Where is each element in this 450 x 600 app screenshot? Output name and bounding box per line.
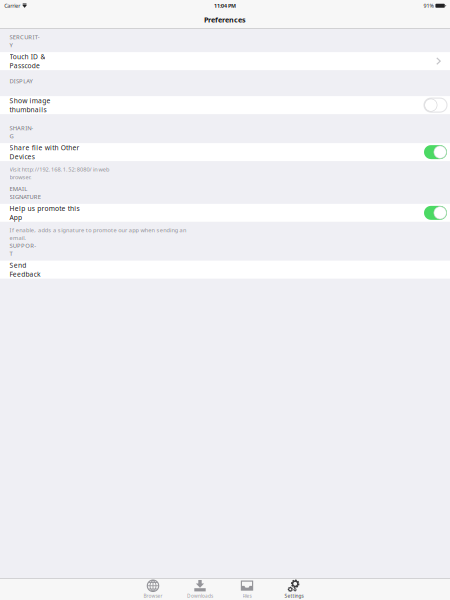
staticText: Send Feedback [10,260,41,279]
button[interactable]: Send Feedback [0,261,450,279]
staticText: 11:04 PM [214,2,236,9]
staticText: Visit http://192.168.1.52:8080/ in web b… [10,166,109,181]
staticText: Help us promote this App [10,204,79,222]
button[interactable]: Browser [129,579,176,600]
staticText: Files [242,593,251,599]
staticText: Show image thumbnails [10,96,50,114]
staticText: Downloads [187,593,213,599]
staticText: Share file with Other Devices [10,143,80,161]
button[interactable]: Show image thumbnails [0,96,450,114]
button[interactable]: Files [223,579,270,600]
button[interactable]: Downloads [176,579,223,600]
staticText: 91% [424,2,434,9]
staticText: SUPPORT [10,241,36,257]
staticText: SHARING [10,124,33,140]
button[interactable]: Touch ID & Passcode [0,52,450,70]
button[interactable]: Share file with Other Devices [0,143,450,161]
staticText: Touch ID & Passcode [10,52,45,70]
staticText: Settings [284,593,303,599]
staticText: SERCURITY [10,33,40,49]
staticText: EMAIL SIGNATURE [10,185,41,201]
button[interactable]: Settings [270,579,317,600]
staticText: DISPLAY [10,77,32,93]
staticText: Browser [143,593,162,599]
staticText: If enable, adds a signature to promote o… [10,226,186,242]
staticText: Preferences [204,15,246,25]
staticText: Carrier [4,2,20,9]
button[interactable]: Help us promote this App [0,204,450,222]
